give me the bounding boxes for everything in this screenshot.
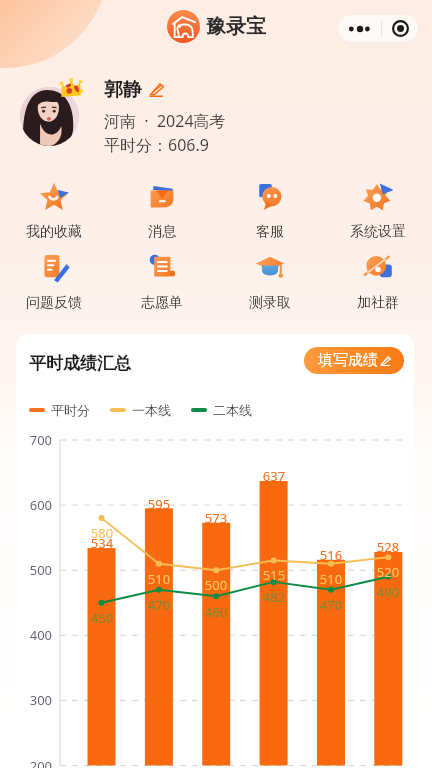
staticText: 510 <box>311 570 351 587</box>
staticText: 豫录宝 <box>206 14 266 39</box>
staticText: 300 <box>16 691 52 709</box>
staticText: 573 <box>196 509 236 526</box>
button[interactable]: 客服 <box>216 181 324 241</box>
staticText: 200 <box>16 757 52 768</box>
staticText: 河南 · 2024高考 <box>104 110 226 132</box>
staticText: 我的收藏 <box>26 223 82 241</box>
staticText: 637 <box>254 467 294 484</box>
staticText: 平时分：606.9 <box>104 134 209 156</box>
staticText: 500 <box>16 561 52 579</box>
button[interactable]: 消息 <box>108 181 216 241</box>
staticText: 470 <box>139 596 179 613</box>
staticText: 490 <box>368 583 408 600</box>
staticText: 加社群 <box>357 294 399 312</box>
staticText: 580 <box>82 524 122 541</box>
staticText: 595 <box>139 495 179 512</box>
staticText: 516 <box>311 546 351 563</box>
button[interactable]: 豫录宝 <box>167 10 266 43</box>
staticText: 482 <box>254 588 294 605</box>
button[interactable]: 测录取 <box>216 252 324 312</box>
staticText: 515 <box>254 566 294 583</box>
staticText: 534 <box>82 534 122 551</box>
button[interactable]: 志愿单 <box>108 252 216 312</box>
staticText: 志愿单 <box>141 294 183 312</box>
staticText: 平时分 <box>51 402 90 418</box>
staticText: 600 <box>16 496 52 514</box>
staticText: 700 <box>16 431 52 449</box>
button[interactable]: Avatar <box>20 87 79 146</box>
button[interactable]: More options <box>338 15 381 42</box>
staticText: 消息 <box>148 223 176 241</box>
staticText: 400 <box>16 626 52 644</box>
staticText: 510 <box>139 570 179 587</box>
staticText: 问题反馈 <box>26 294 82 312</box>
button[interactable]: 我的收藏 <box>0 181 108 241</box>
staticText: 平时成绩汇总 <box>29 353 131 374</box>
staticText: 二本线 <box>213 402 252 418</box>
button[interactable]: Close mini program <box>382 15 418 42</box>
staticText: 500 <box>196 576 236 593</box>
staticText: 520 <box>368 563 408 580</box>
staticText: 测录取 <box>249 294 291 312</box>
staticText: 填写成绩 <box>318 351 378 370</box>
staticText: 一本线 <box>132 402 171 418</box>
staticText: 系统设置 <box>350 223 406 241</box>
button[interactable]: 问题反馈 <box>0 252 108 312</box>
staticText: 528 <box>368 538 408 555</box>
staticText: 460 <box>196 603 236 620</box>
staticText: 450 <box>82 609 122 626</box>
button[interactable]: Edit profile <box>148 81 166 99</box>
button[interactable]: 填写成绩 <box>304 347 404 374</box>
staticText: 客服 <box>256 223 284 241</box>
button[interactable]: 系统设置 <box>324 181 432 241</box>
staticText: 郭静 <box>104 78 142 102</box>
button[interactable]: 加社群 <box>324 252 432 312</box>
staticText: 470 <box>311 596 351 613</box>
